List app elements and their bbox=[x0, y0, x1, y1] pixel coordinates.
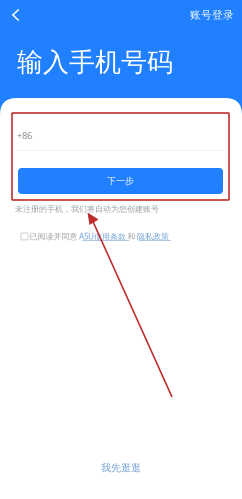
button[interactable]: 我先逛逛 bbox=[91, 459, 151, 477]
staticText: 和 bbox=[127, 231, 135, 241]
button[interactable]: 下一步 bbox=[18, 168, 223, 194]
staticText: 账号登录 bbox=[190, 8, 234, 22]
button[interactable]: 已阅读并同意 bbox=[21, 231, 169, 242]
button[interactable]: 账号登录 bbox=[185, 3, 239, 27]
staticText: +86 bbox=[17, 129, 32, 142]
staticText: 已阅读并同意 bbox=[29, 231, 77, 241]
staticText: 我先逛逛 bbox=[101, 462, 141, 474]
button[interactable]: Back bbox=[2, 2, 30, 28]
staticText: 隐私政策 bbox=[137, 231, 169, 241]
staticText: ASU使用条款 bbox=[79, 231, 126, 242]
staticText: 下一步 bbox=[107, 175, 134, 187]
staticText: 未注册的手机，我们将自动为您创建账号 bbox=[15, 204, 159, 214]
staticText: 输入手机号码 bbox=[17, 46, 173, 79]
